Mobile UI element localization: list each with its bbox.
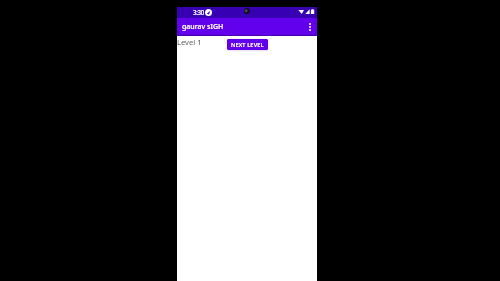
button[interactable]: More options	[304, 21, 316, 33]
staticText: gaurav sIGH	[182, 22, 224, 32]
button[interactable]: NEXT LEVEL	[227, 39, 268, 50]
staticText: Level 1	[177, 37, 202, 47]
staticText: NEXT LEVEL	[231, 41, 264, 49]
staticText: 3:30	[193, 8, 204, 16]
